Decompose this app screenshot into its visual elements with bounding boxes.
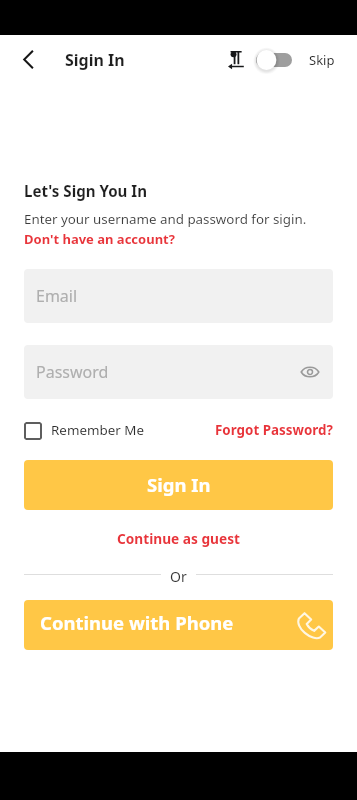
button[interactable]: Forgot Password?	[215, 421, 333, 439]
staticText: Enter your username and password for sig…	[24, 210, 307, 228]
button[interactable]: Text direction	[224, 45, 248, 75]
button[interactable]: Remember Me	[24, 421, 144, 439]
button[interactable]: Sign In	[24, 460, 333, 510]
button[interactable]: Toggle text direction	[256, 48, 292, 72]
button[interactable]: Skip	[309, 51, 357, 69]
staticText: Or	[170, 567, 187, 582]
staticText: Continue with Phone	[40, 610, 234, 635]
staticText: Email	[36, 285, 78, 307]
staticText: Sigin In	[65, 49, 125, 71]
button[interactable]: Back	[10, 42, 45, 77]
staticText: Sign In	[147, 472, 211, 497]
staticText: Let's Sign You In	[24, 181, 148, 202]
button[interactable]: Email	[24, 269, 333, 323]
button[interactable]: Show password	[297, 359, 323, 385]
button[interactable]: Password	[24, 345, 333, 399]
button[interactable]: Continue with Phone	[24, 600, 333, 650]
button[interactable]: Continue as guest	[117, 529, 240, 548]
button[interactable]: Don't have an account?	[24, 230, 175, 248]
staticText: Remember Me	[51, 421, 144, 439]
staticText: Password	[36, 361, 109, 383]
